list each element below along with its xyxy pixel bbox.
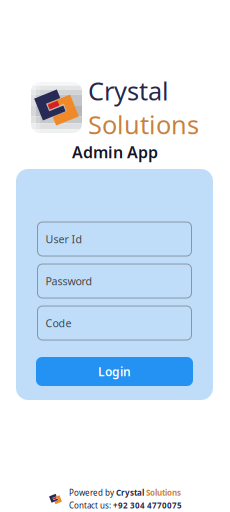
staticText: Admin App <box>72 141 158 163</box>
staticText: Contact us: <box>69 500 111 511</box>
staticText: Solutions <box>146 487 181 498</box>
staticText: Powered by <box>69 487 114 498</box>
button[interactable]: User Id <box>37 222 191 256</box>
staticText: Crystal <box>88 74 169 107</box>
button[interactable]: Code <box>37 306 191 340</box>
staticText: Crystal <box>116 487 144 498</box>
staticText: User Id <box>45 232 82 246</box>
button[interactable]: Login <box>36 357 193 386</box>
staticText: Solutions <box>88 107 199 141</box>
button[interactable]: Password <box>37 264 191 298</box>
staticText: +92 304 4770075 <box>113 500 182 511</box>
staticText: Code <box>45 316 71 330</box>
staticText: Password <box>45 274 92 288</box>
staticText: Login <box>98 363 131 379</box>
